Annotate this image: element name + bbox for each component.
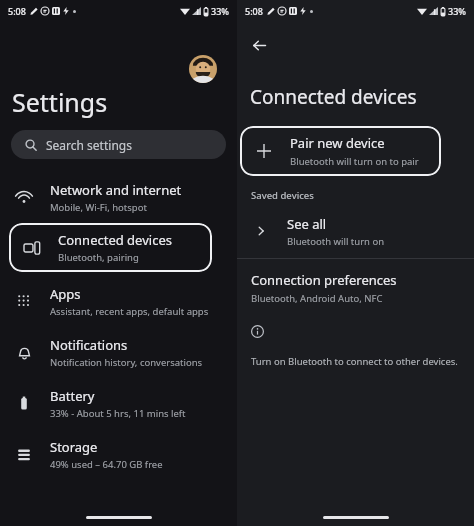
staticText: 33% [448,5,466,17]
staticText: Connected devices [58,231,172,249]
staticText: Bluetooth, Android Auto, NFC [251,292,383,305]
button[interactable]: Connection preferences [237,271,474,305]
button[interactable]: Pair new device [240,126,441,176]
button[interactable]: Notifications [0,332,237,372]
button[interactable]: Apps [0,281,237,321]
staticText: Assistant, recent apps, default apps [50,305,209,318]
staticText: Turn on Bluetooth to connect to other de… [251,355,458,368]
staticText: 33% [211,5,229,17]
staticText: Pair new device [290,134,385,152]
staticText: Bluetooth will turn on [287,235,385,248]
staticText: Mobile, Wi-Fi, hotspot [50,201,147,214]
staticText: Search settings [46,137,132,153]
button[interactable]: Back [246,32,272,58]
staticText: 5:08 [245,5,263,17]
staticText: Notification history, conversations [50,356,203,369]
button[interactable]: Account avatar [189,55,217,83]
staticText: Notifications [50,336,128,354]
staticText: 33% - About 5 hrs, 11 mins left [50,407,186,420]
staticText: See all [287,215,327,233]
staticText: Battery [50,387,95,405]
staticText: Connected devices [250,84,417,110]
staticText: Network and internet [50,181,182,199]
staticText: Storage [50,438,98,456]
button[interactable]: See all [237,212,474,250]
staticText: Settings [12,85,108,119]
staticText: Bluetooth will turn on to pair [290,155,419,168]
button[interactable]: Connected devices [9,223,212,272]
staticText: Connection preferences [251,271,397,289]
button[interactable]: Network and internet [0,177,237,217]
staticText: Apps [50,285,81,303]
button[interactable]: Battery [0,383,237,423]
staticText: 5:08 [8,5,26,17]
button[interactable]: Search settings [11,130,226,159]
button[interactable]: Storage [0,434,237,474]
staticText: Saved devices [251,189,314,202]
staticText: 49% used – 64.70 GB free [50,458,163,471]
staticText: Bluetooth, pairing [58,251,139,264]
